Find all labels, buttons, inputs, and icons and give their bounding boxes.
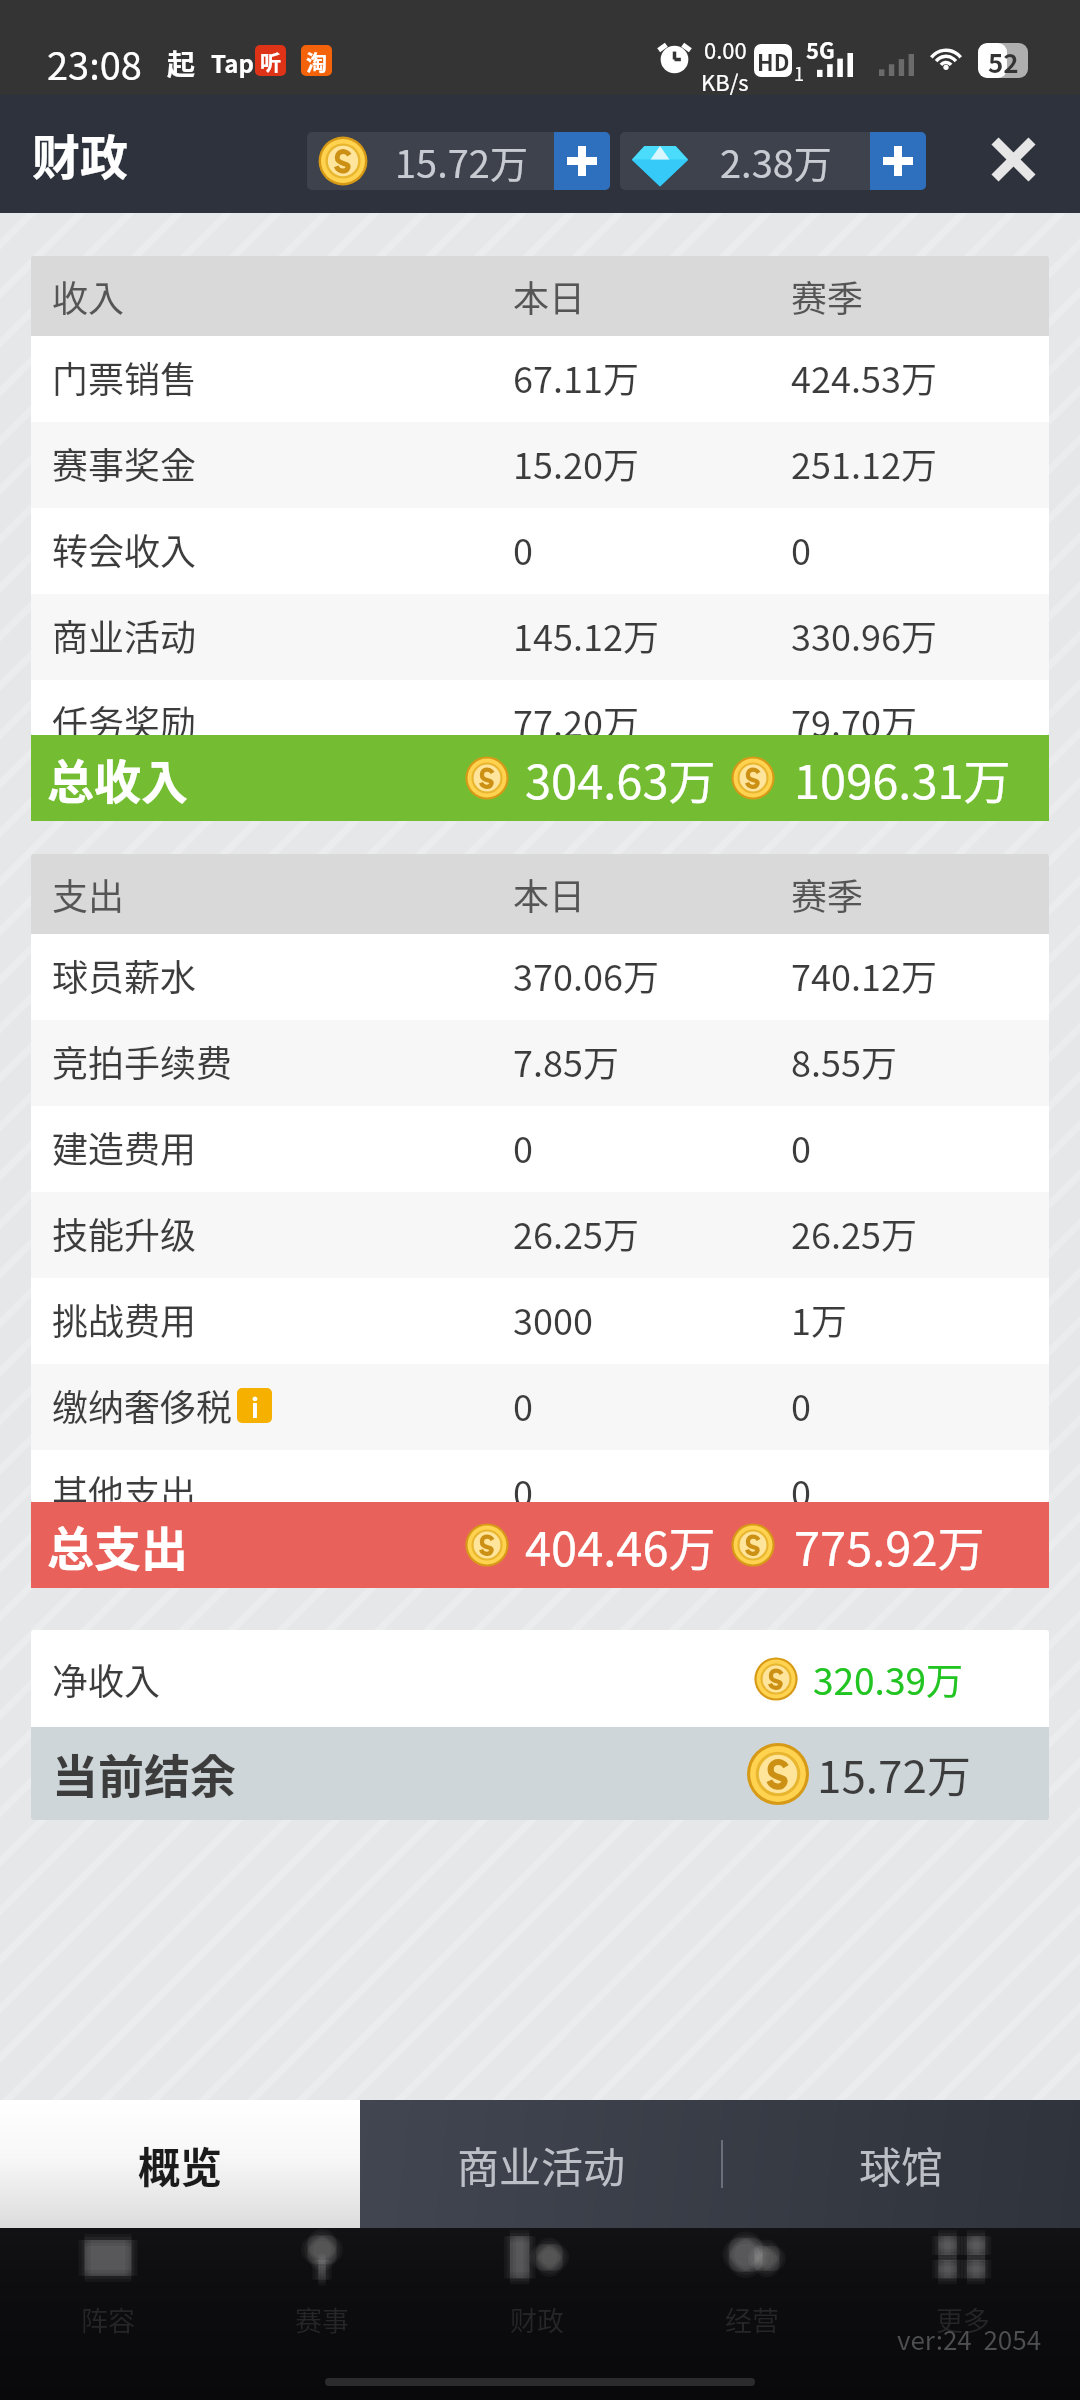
- staticText: 0: [791, 1465, 811, 1502]
- staticText: 概览: [138, 2134, 223, 2195]
- staticText: 转会收入: [52, 523, 197, 575]
- button[interactable]: 阵容: [44, 2228, 172, 2348]
- staticText: 1万: [791, 1293, 847, 1345]
- staticText: 挑战费用: [52, 1293, 197, 1345]
- staticText: 起: [167, 43, 196, 84]
- button[interactable]: 缴纳奢侈税: [31, 1364, 1049, 1450]
- staticText: KB/s: [701, 65, 749, 97]
- button[interactable]: 球馆: [722, 2100, 1080, 2228]
- staticText: 251.12万: [791, 437, 937, 489]
- button[interactable]: 概览: [0, 2100, 360, 2228]
- staticText: 赛季: [791, 270, 864, 322]
- button[interactable]: 总支出: [31, 1502, 1049, 1588]
- staticText: 净收入: [52, 1653, 161, 1705]
- staticText: 0: [513, 1121, 533, 1173]
- staticText: HD: [757, 45, 790, 77]
- button[interactable]: 更多: [899, 2228, 1027, 2348]
- staticText: 商业活动: [457, 2134, 626, 2195]
- button[interactable]: 任务奖励: [31, 680, 1049, 735]
- staticText: 424.53万: [791, 351, 937, 403]
- button[interactable]: 商业活动: [31, 594, 1049, 680]
- staticText: 0: [513, 1379, 533, 1431]
- staticText: 建造费用: [52, 1121, 197, 1173]
- staticText: 赛事: [295, 2300, 349, 2339]
- staticText: 0: [513, 523, 533, 575]
- staticText: 总收入: [47, 744, 188, 812]
- staticText: 15.20万: [513, 437, 639, 489]
- button[interactable]: 其他支出: [31, 1450, 1049, 1502]
- button[interactable]: 净收入: [31, 1630, 1049, 1727]
- staticText: 26.25万: [513, 1207, 639, 1259]
- staticText: 0: [513, 1465, 533, 1502]
- button[interactable]: 财政: [473, 2228, 601, 2348]
- staticText: 本日: [513, 868, 586, 920]
- button[interactable]: Add: [554, 132, 610, 190]
- staticText: ver:24 2054: [897, 2320, 1042, 2358]
- button[interactable]: Close: [967, 113, 1059, 205]
- staticText: 1: [794, 60, 804, 86]
- staticText: 收入: [52, 270, 125, 322]
- staticText: 304.63万: [525, 744, 716, 812]
- button[interactable]: 15.72万: [307, 132, 610, 190]
- staticText: 23:08: [47, 36, 142, 91]
- staticText: 经营: [725, 2300, 779, 2339]
- staticText: 门票销售: [52, 351, 197, 403]
- staticText: 0: [791, 1379, 811, 1431]
- staticText: 145.12万: [513, 609, 659, 661]
- staticText: 任务奖励: [52, 695, 197, 735]
- staticText: 404.46万: [525, 1511, 716, 1579]
- staticText: 赛季: [791, 868, 864, 920]
- button[interactable]: 当前结余: [31, 1727, 1049, 1820]
- staticText: 15.72万: [817, 1742, 971, 1806]
- staticText: 67.11万: [513, 351, 639, 403]
- staticText: 阵容: [81, 2300, 135, 2339]
- staticText: 8.55万: [791, 1035, 897, 1087]
- button[interactable]: 建造费用: [31, 1106, 1049, 1192]
- staticText: 赛事奖金: [52, 437, 197, 489]
- button[interactable]: 赛事: [258, 2228, 386, 2348]
- button[interactable]: 技能升级: [31, 1192, 1049, 1278]
- staticText: i: [251, 1388, 259, 1423]
- staticText: 77.20万: [513, 695, 639, 735]
- staticText: 财政: [510, 2300, 564, 2339]
- staticText: 财政: [32, 119, 129, 189]
- staticText: 0: [791, 523, 811, 575]
- staticText: 支出: [52, 868, 125, 920]
- staticText: 商业活动: [52, 609, 197, 661]
- staticText: 听: [260, 46, 281, 76]
- button[interactable]: 赛事奖金: [31, 422, 1049, 508]
- button[interactable]: 转会收入: [31, 508, 1049, 594]
- staticText: 2.38万: [720, 134, 832, 189]
- staticText: 总支出: [47, 1511, 188, 1579]
- staticText: 3000: [513, 1293, 593, 1345]
- button[interactable]: 挑战费用: [31, 1278, 1049, 1364]
- staticText: 竞拍手续费: [52, 1035, 233, 1087]
- staticText: 15.72万: [395, 134, 528, 189]
- button[interactable]: 门票销售: [31, 336, 1049, 422]
- staticText: 320.39万: [813, 1652, 963, 1706]
- button[interactable]: Add: [870, 132, 926, 190]
- staticText: 当前结余: [52, 1740, 236, 1807]
- staticText: 0: [791, 1121, 811, 1173]
- staticText: 球员薪水: [52, 949, 197, 1001]
- staticText: 更多: [936, 2300, 990, 2339]
- button[interactable]: 商业活动: [360, 2100, 722, 2228]
- staticText: 淘: [306, 46, 327, 76]
- button[interactable]: 经营: [688, 2228, 816, 2348]
- staticText: Tap: [211, 45, 254, 80]
- button[interactable]: 竞拍手续费: [31, 1020, 1049, 1106]
- staticText: 79.70万: [791, 695, 917, 735]
- button[interactable]: 总收入: [31, 735, 1049, 821]
- staticText: 1096.31万: [794, 744, 1011, 812]
- button[interactable]: 球员薪水: [31, 934, 1049, 1020]
- staticText: 775.92万: [794, 1511, 985, 1579]
- staticText: 其他支出: [52, 1465, 197, 1502]
- staticText: 7.85万: [513, 1035, 619, 1087]
- staticText: 370.06万: [513, 949, 659, 1001]
- staticText: 缴纳奢侈税: [52, 1379, 233, 1431]
- staticText: 5G: [806, 33, 835, 65]
- staticText: 740.12万: [791, 949, 937, 1001]
- button[interactable]: 2.38万: [620, 132, 926, 190]
- staticText: 技能升级: [52, 1207, 197, 1259]
- staticText: 本日: [513, 270, 586, 322]
